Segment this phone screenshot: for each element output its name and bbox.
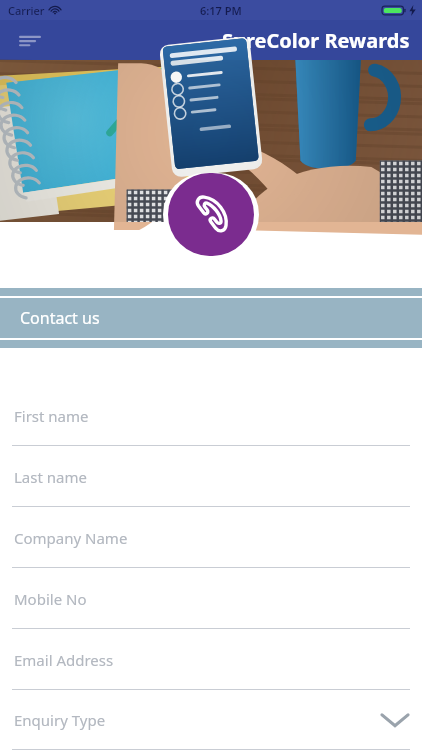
staticText: Mobile No xyxy=(14,589,87,609)
staticText: 6:17 PM xyxy=(200,3,242,18)
button[interactable]: First name xyxy=(0,385,422,446)
staticText: Last name xyxy=(14,467,87,487)
staticText: SureColor Rewards xyxy=(222,27,410,54)
staticText: Email Address xyxy=(14,650,114,670)
button[interactable]: Email Address xyxy=(0,629,422,690)
button[interactable]: Mobile No xyxy=(0,568,422,629)
button[interactable]: Company Name xyxy=(0,507,422,568)
staticText: Carrier xyxy=(8,3,45,18)
staticText: Company Name xyxy=(14,528,128,548)
staticText: Contact us xyxy=(20,307,100,329)
staticText: First name xyxy=(14,406,89,426)
staticText: Enquiry Type xyxy=(14,710,106,730)
button[interactable]: Call us xyxy=(168,173,254,256)
button[interactable]: Last name xyxy=(0,446,422,507)
button[interactable]: Enquiry Type xyxy=(0,690,422,750)
other: Expand enquiry type options xyxy=(382,712,408,728)
button[interactable]: Open navigation menu xyxy=(12,22,48,58)
